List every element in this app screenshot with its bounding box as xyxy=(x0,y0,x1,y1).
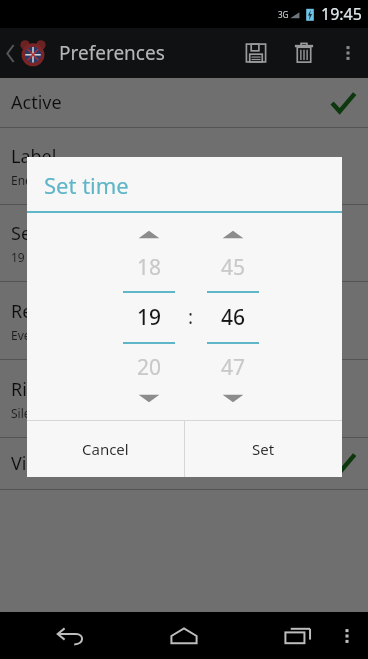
button[interactable]: Se xyxy=(0,205,368,282)
staticText: Label xyxy=(11,144,57,169)
staticText: Active xyxy=(11,90,62,115)
staticText: Sile xyxy=(11,405,31,421)
button[interactable]: Label xyxy=(0,128,368,205)
button[interactable]: Re xyxy=(0,282,368,360)
button[interactable]: Vi xyxy=(0,438,368,490)
staticText: 45 xyxy=(221,253,246,282)
button[interactable]: Save xyxy=(232,29,280,77)
button[interactable]: Home xyxy=(156,616,212,656)
button[interactable]: Navigate up xyxy=(0,38,50,68)
staticText: 46 xyxy=(221,303,246,332)
staticText: 47 xyxy=(221,353,246,382)
staticText: Se xyxy=(11,221,32,246)
staticText: Set time xyxy=(44,170,129,200)
button[interactable]: Recents xyxy=(270,616,326,656)
staticText: Preferences xyxy=(59,40,165,66)
staticText: 20 xyxy=(137,353,162,382)
staticText: : xyxy=(188,304,194,330)
button[interactable]: Back xyxy=(42,616,98,656)
staticText: 19:45 xyxy=(321,3,362,25)
button[interactable]: Cancel xyxy=(27,421,184,477)
staticText: Vi xyxy=(11,451,27,476)
staticText: Set xyxy=(252,439,275,459)
button[interactable]: Menu xyxy=(326,615,368,657)
button[interactable]: Set xyxy=(185,421,342,477)
staticText: Cancel xyxy=(82,439,129,459)
staticText: 19 xyxy=(11,249,25,265)
button[interactable]: Active xyxy=(0,78,368,128)
staticText: Ene xyxy=(11,172,32,188)
staticText: 18 xyxy=(137,253,162,282)
staticText: Ri xyxy=(11,377,27,402)
staticText: Re xyxy=(11,299,33,324)
staticText: 19 xyxy=(137,303,162,332)
button[interactable]: More options xyxy=(328,33,368,73)
button[interactable]: Delete xyxy=(280,29,328,77)
staticText: 3G xyxy=(278,9,289,20)
button[interactable]: Ri xyxy=(0,360,368,438)
staticText: Eve xyxy=(11,327,31,343)
